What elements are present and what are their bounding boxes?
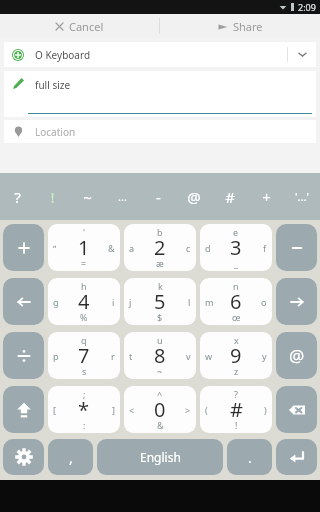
staticText: t xyxy=(129,350,133,362)
button[interactable]: O Keyboard xyxy=(4,42,316,67)
button[interactable]: ? xyxy=(0,173,35,220)
button[interactable]: + xyxy=(248,173,284,220)
button[interactable]: Plus xyxy=(3,224,44,271)
staticText: O Keyboard xyxy=(35,48,91,62)
staticText: ~ xyxy=(157,365,163,377)
button[interactable]: ; xyxy=(48,386,120,433)
staticText: & xyxy=(157,419,164,431)
staticText: Share xyxy=(233,19,263,34)
staticText: o xyxy=(261,296,267,308)
staticText: > xyxy=(185,404,191,416)
staticText: ] xyxy=(112,404,115,416)
button[interactable]: ! xyxy=(35,173,70,220)
staticText: j xyxy=(129,296,132,308)
staticText: l xyxy=(188,296,191,308)
staticText: @ xyxy=(289,344,305,367)
staticText: 7 xyxy=(78,342,90,369)
button[interactable]: - xyxy=(140,173,176,220)
staticText: a xyxy=(129,242,135,254)
staticText: i xyxy=(112,296,115,308)
staticText: : xyxy=(83,419,86,431)
button[interactable]: Share xyxy=(160,14,320,38)
button[interactable]: Backspace xyxy=(276,386,317,433)
button[interactable]: Expand account selector xyxy=(288,42,316,67)
staticText: @ xyxy=(187,187,201,207)
button[interactable]: u xyxy=(124,332,196,379)
staticText: # xyxy=(230,396,243,423)
staticText: q xyxy=(81,334,87,346)
staticText: p xyxy=(53,350,59,362)
button[interactable]: k xyxy=(124,278,196,325)
button[interactable]: # xyxy=(212,173,248,220)
staticText: Location xyxy=(35,125,76,139)
staticText: + xyxy=(262,187,271,207)
button[interactable]: h xyxy=(48,278,120,325)
staticText: * xyxy=(78,396,90,423)
button[interactable]: q xyxy=(48,332,120,379)
staticText: 1 xyxy=(78,234,90,261)
staticText: ) xyxy=(264,404,267,416)
staticText: 5 xyxy=(154,288,166,315)
button[interactable]: . xyxy=(227,439,272,475)
button[interactable]: x xyxy=(200,332,272,379)
staticText: - xyxy=(156,187,161,207)
button[interactable]: ... xyxy=(105,173,140,220)
button[interactable]: Enter xyxy=(276,439,317,475)
staticText: n xyxy=(233,280,239,292)
button[interactable]: Move cursor left xyxy=(3,278,44,325)
staticText: z xyxy=(234,365,239,377)
button[interactable]: Minus xyxy=(276,224,317,271)
staticText: œ xyxy=(232,311,241,323)
staticText: ʺ xyxy=(53,242,57,254)
staticText: v xyxy=(186,350,191,362)
button[interactable]: ' xyxy=(48,224,120,271)
staticText: '...' xyxy=(295,189,309,204)
staticText: m xyxy=(205,296,214,308)
button[interactable]: ^ xyxy=(124,386,196,433)
button[interactable]: ~ xyxy=(70,173,105,220)
staticText: e xyxy=(233,226,239,238)
staticText: ! xyxy=(235,419,238,431)
staticText: [ xyxy=(53,404,56,416)
button[interactable]: English xyxy=(97,439,223,475)
button[interactable]: @ xyxy=(176,173,212,220)
button[interactable]: n xyxy=(200,278,272,325)
staticText: b xyxy=(157,226,163,238)
staticText: = xyxy=(81,257,87,269)
staticText: ... xyxy=(118,189,127,204)
staticText: 4 xyxy=(78,288,90,315)
staticText: % xyxy=(80,311,88,323)
button[interactable]: ? xyxy=(200,386,272,433)
staticText: x xyxy=(234,334,239,346)
button[interactable]: Move cursor right xyxy=(276,278,317,325)
button[interactable]: '...' xyxy=(284,173,320,220)
button[interactable]: Settings xyxy=(3,439,44,475)
button[interactable]: Location xyxy=(4,120,316,143)
staticText: ' xyxy=(83,226,86,238)
staticText: u xyxy=(157,334,163,346)
staticText: æ xyxy=(156,257,164,269)
staticText: ? xyxy=(234,388,238,400)
button[interactable]: , xyxy=(48,439,93,475)
button[interactable]: Cancel xyxy=(0,14,159,38)
button[interactable]: b xyxy=(124,224,196,271)
staticText: 0 xyxy=(154,396,166,423)
button[interactable]: e xyxy=(200,224,272,271)
staticText: 2:09 xyxy=(298,1,316,13)
staticText: g xyxy=(53,296,59,308)
staticText: k xyxy=(158,280,163,292)
staticText: $ xyxy=(157,311,163,323)
staticText: ~ xyxy=(83,187,92,207)
button[interactable]: Shift xyxy=(3,386,44,433)
staticText: ( xyxy=(205,404,208,416)
staticText: Cancel xyxy=(69,19,104,34)
button[interactable]: @ xyxy=(276,332,317,379)
staticText: . xyxy=(248,448,252,467)
staticText: _ xyxy=(234,257,238,269)
staticText: ! xyxy=(50,187,55,207)
staticText: h xyxy=(81,280,87,292)
staticText: 8 xyxy=(154,342,166,369)
button[interactable]: full size xyxy=(4,71,316,117)
button[interactable]: Divide xyxy=(3,332,44,379)
staticText: d xyxy=(205,242,211,254)
